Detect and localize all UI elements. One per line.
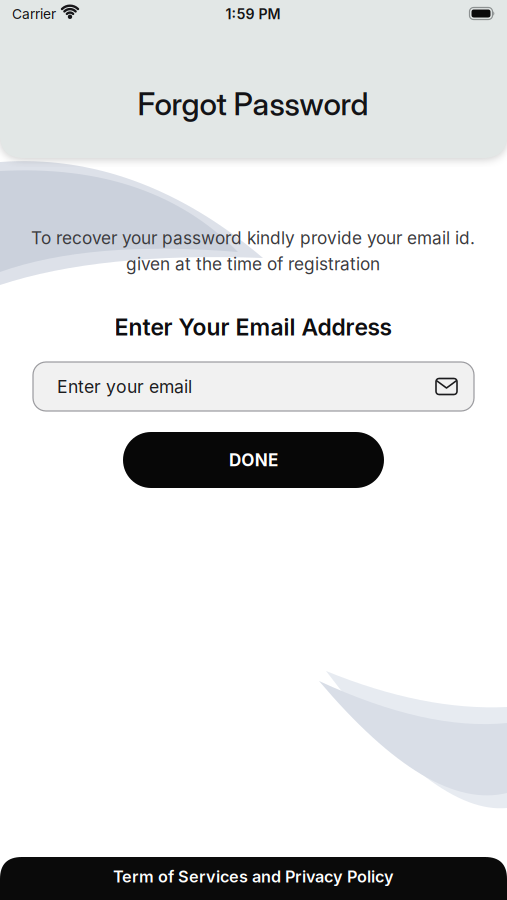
staticText: Enter your email [57, 376, 192, 397]
button[interactable]: Term of Services and Privacy Policy [0, 857, 507, 900]
staticText: Term of Services and Privacy Policy [113, 867, 394, 886]
button[interactable]: DONE [123, 432, 384, 488]
button[interactable]: Enter your email [33, 362, 474, 411]
staticText: given at the time of registration [126, 253, 380, 274]
staticText: Forgot Password [137, 85, 368, 123]
staticText: Enter Your Email Address [114, 313, 391, 341]
staticText: Carrier [12, 6, 56, 22]
staticText: To recover your password kindly provide … [31, 228, 475, 248]
staticText: 1:59 PM [225, 5, 280, 22]
staticText: DONE [229, 450, 278, 470]
